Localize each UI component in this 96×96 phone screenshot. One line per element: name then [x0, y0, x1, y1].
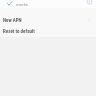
button[interactable]: Reset to default	[0, 25, 96, 36]
staticText: New APN	[3, 17, 22, 23]
button[interactable]: marks	[0, 0, 96, 9]
staticText: Reset to default	[3, 28, 35, 34]
button[interactable]: APN options	[85, 0, 94, 6]
button[interactable]: New APN	[0, 14, 96, 25]
staticText: marks	[16, 2, 28, 7]
